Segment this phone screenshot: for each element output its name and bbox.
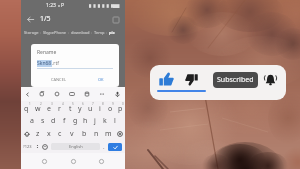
button[interactable]: k <box>100 114 110 127</box>
staticText: Skn68 <box>37 60 52 67</box>
staticText: CANCEL <box>51 77 66 82</box>
staticText: b <box>82 129 87 139</box>
button[interactable]: ?123 <box>23 144 32 149</box>
button[interactable]: s <box>37 114 48 127</box>
button[interactable]: b <box>78 127 90 140</box>
button[interactable]: 3 <box>43 101 54 114</box>
staticText: w <box>35 104 41 114</box>
button[interactable]: Select all <box>109 13 122 26</box>
button[interactable]: m <box>102 127 114 140</box>
button[interactable]: download <box>71 30 90 35</box>
staticText: n <box>94 129 99 139</box>
button[interactable]: 8 <box>95 101 105 114</box>
button[interactable]: 2 <box>32 101 43 114</box>
button[interactable]: pic <box>109 30 115 35</box>
staticText: 8 <box>102 102 104 106</box>
button[interactable]: 1 <box>21 101 32 114</box>
button[interactable]: Keyboard tool <box>54 91 60 97</box>
staticText: f <box>63 116 66 126</box>
button[interactable]: Keyboard tool <box>84 91 90 97</box>
staticText: l <box>114 116 116 126</box>
staticText: P <box>61 2 65 9</box>
button[interactable]: Notifications <box>262 71 279 88</box>
staticText: OK <box>98 77 104 82</box>
staticText: 1/5 <box>40 14 51 24</box>
button[interactable]: Recents <box>39 156 50 167</box>
button[interactable]: 6 <box>75 101 85 114</box>
staticText: z <box>36 129 40 139</box>
staticText: h <box>83 116 88 126</box>
button[interactable]: Shift <box>21 127 32 140</box>
staticText: 1:23 <box>46 2 56 9</box>
button[interactable]: OK <box>95 76 107 83</box>
staticText: › <box>90 30 94 35</box>
button[interactable]: Keyboard tool <box>39 91 45 97</box>
button[interactable]: SkypePhone <box>43 30 67 35</box>
button[interactable]: 4 <box>54 101 65 114</box>
button[interactable]: 9 <box>105 101 115 114</box>
staticText: i <box>99 104 101 114</box>
button[interactable]: d <box>48 114 59 127</box>
staticText: j <box>94 116 96 126</box>
staticText: m <box>105 129 112 139</box>
button[interactable]: Backspace <box>114 127 125 140</box>
staticText: 9 <box>112 102 114 106</box>
staticText: u <box>88 104 93 114</box>
button[interactable]: 0 <box>115 101 125 114</box>
staticText: 3 <box>51 102 53 106</box>
button[interactable]: 7 <box>85 101 95 114</box>
staticText: .rtf <box>52 60 59 67</box>
staticText: r <box>58 104 61 114</box>
button[interactable]: Subscribed <box>213 72 258 88</box>
button[interactable]: x <box>43 127 54 140</box>
staticText: › <box>67 30 71 35</box>
button[interactable]: Emoji <box>42 144 48 150</box>
button[interactable]: Enter <box>108 143 122 151</box>
staticText: g <box>73 116 78 126</box>
button[interactable]: f <box>59 114 70 127</box>
staticText: a <box>30 116 34 126</box>
button[interactable]: z <box>32 127 43 140</box>
staticText: y <box>78 104 82 114</box>
staticText: t <box>69 104 72 114</box>
staticText: 6 <box>82 102 84 106</box>
button[interactable]: Voice input <box>114 91 121 98</box>
staticText: p <box>118 104 123 114</box>
staticText: 7 <box>92 102 94 106</box>
staticText: o <box>108 104 113 114</box>
button[interactable]: Language <box>35 144 40 149</box>
button[interactable]: g <box>70 114 80 127</box>
button[interactable]: Like <box>158 71 175 88</box>
button[interactable]: v <box>66 127 78 140</box>
staticText: . <box>103 143 105 151</box>
button[interactable]: n <box>90 127 102 140</box>
staticText: English <box>69 144 83 149</box>
button[interactable]: CANCEL <box>48 76 69 83</box>
button[interactable]: j <box>90 114 100 127</box>
staticText: 0 <box>122 102 124 106</box>
staticText: 2 <box>40 102 42 106</box>
staticText: Rename <box>37 49 57 56</box>
staticText: k <box>103 116 107 126</box>
staticText: x <box>47 129 51 139</box>
staticText: › <box>39 30 43 35</box>
button[interactable]: Home <box>68 156 79 167</box>
staticText: › <box>105 30 109 35</box>
staticText: d <box>51 116 56 126</box>
button[interactable]: l <box>110 114 120 127</box>
button[interactable]: Storage <box>24 30 39 35</box>
button[interactable]: More <box>99 91 105 97</box>
button[interactable]: Previous <box>25 92 30 97</box>
button[interactable]: h <box>80 114 90 127</box>
button[interactable]: Keyboard tool <box>69 91 75 97</box>
button[interactable]: a <box>26 114 37 127</box>
button[interactable]: Temp <box>94 30 105 35</box>
button[interactable]: Back <box>24 13 37 26</box>
button[interactable]: 5 <box>65 101 75 114</box>
button[interactable]: Dislike <box>184 72 199 87</box>
button[interactable]: Back <box>96 156 107 167</box>
staticText: e <box>47 104 51 114</box>
staticText: c <box>58 129 62 139</box>
button[interactable]: English <box>51 143 100 150</box>
button[interactable]: c <box>54 127 66 140</box>
